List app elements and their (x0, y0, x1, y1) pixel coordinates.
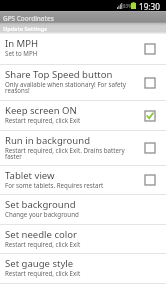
staticText: In MPH (5, 37, 39, 50)
staticText: Only available when stationary! For safe… (5, 80, 132, 95)
staticText: Restart required, click Exit (5, 116, 81, 124)
staticText: Set background (5, 198, 76, 211)
button[interactable]: Set background (0, 195, 166, 224)
staticText: Set gauge style (5, 257, 74, 270)
button[interactable]: Share Top Speed button (0, 65, 166, 100)
staticText: Keep screen ON (5, 104, 77, 117)
staticText: 19:30 (139, 1, 160, 12)
staticText: Update Settings (3, 25, 48, 32)
button[interactable]: Run in background (0, 131, 166, 165)
staticText: Share Top Speed button (5, 68, 113, 81)
staticText: 83% (123, 3, 132, 9)
staticText: Restart required, click Exit. Drains bat… (5, 146, 132, 161)
button[interactable]: Set gauge style (0, 254, 166, 283)
staticText: Tablet view (5, 169, 55, 182)
staticText: For some tablets. Requires restart (5, 181, 104, 189)
button[interactable]: Keep screen ON (0, 101, 166, 130)
staticText: Run in background (5, 134, 91, 147)
staticText: Restart required, click Exit (5, 269, 81, 277)
staticText: Change your background (5, 210, 79, 218)
button[interactable]: Tablet view (0, 166, 166, 194)
staticText: Set needle color (5, 228, 77, 241)
staticText: Restart required, click Exit (5, 240, 81, 248)
button[interactable]: In MPH (0, 34, 166, 64)
button[interactable]: Set needle color (0, 225, 166, 253)
staticText: GPS Coordinates (3, 14, 54, 23)
staticText: Set to MPH (5, 49, 38, 57)
